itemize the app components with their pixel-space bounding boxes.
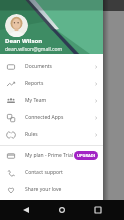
staticText: My Team bbox=[25, 97, 47, 104]
staticText: My plan - Prime Trial bbox=[25, 152, 74, 159]
staticText: Rules bbox=[25, 131, 38, 138]
button[interactable]: Connected Apps bbox=[0, 109, 103, 126]
staticText: Connected Apps bbox=[25, 114, 64, 121]
button[interactable]: UPGRADE bbox=[74, 151, 98, 160]
button[interactable]: Share your love bbox=[0, 181, 103, 198]
staticText: Contact support bbox=[25, 169, 63, 176]
staticText: Share your love bbox=[25, 186, 62, 193]
button[interactable]: Rules bbox=[0, 126, 103, 143]
button[interactable]: Documents bbox=[0, 58, 103, 75]
button[interactable]: Back bbox=[16, 200, 36, 220]
button[interactable]: My Team bbox=[0, 92, 103, 109]
staticText: UPGRADE bbox=[77, 153, 95, 158]
button[interactable]: Profile photo bbox=[5, 14, 28, 37]
button[interactable]: Recent apps bbox=[88, 200, 108, 220]
button[interactable]: My plan - Prime Trial bbox=[0, 147, 103, 164]
staticText: Documents bbox=[25, 63, 52, 70]
staticText: dean.wilson@gmail.com bbox=[5, 46, 63, 53]
staticText: Reports bbox=[25, 80, 44, 87]
button[interactable]: Contact support bbox=[0, 164, 103, 181]
staticText: Dean Wilson bbox=[5, 37, 43, 45]
button[interactable]: Reports bbox=[0, 75, 103, 92]
button[interactable]: Home bbox=[52, 200, 72, 220]
